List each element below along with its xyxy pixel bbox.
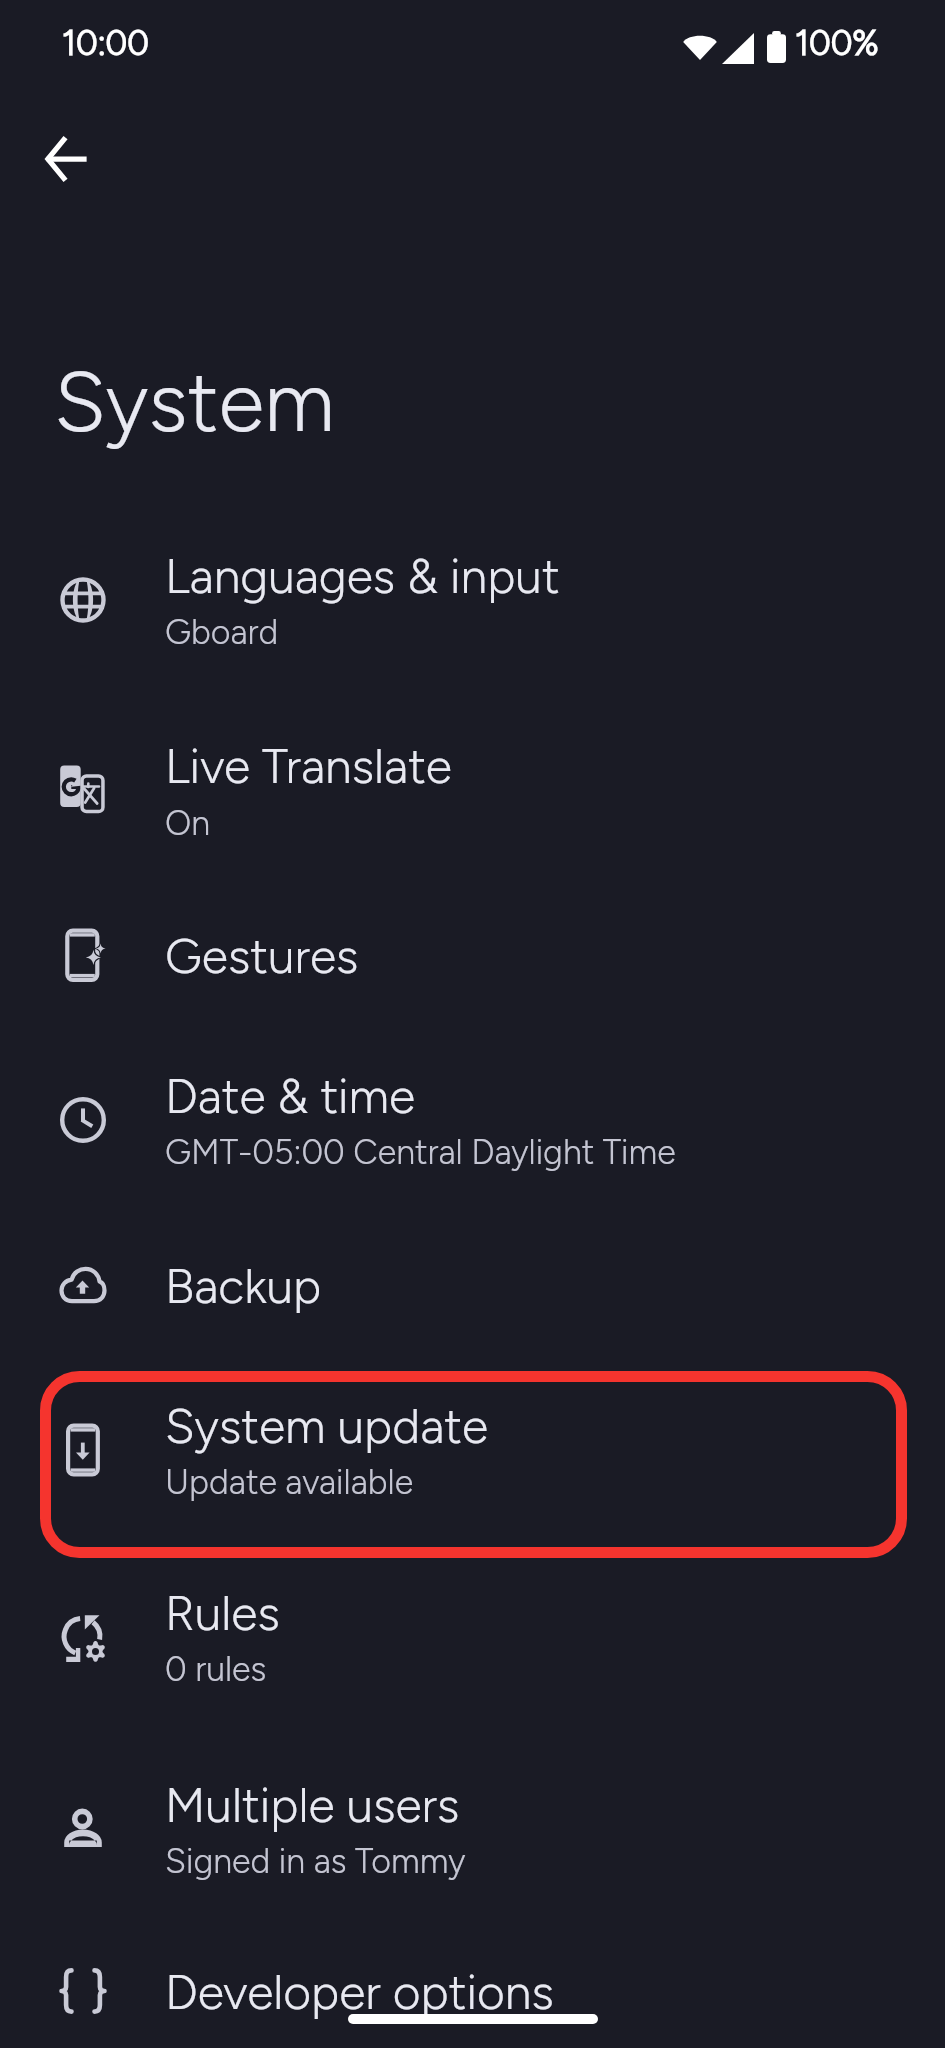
staticText: Developer options — [165, 1963, 554, 2021]
button[interactable] — [0, 695, 945, 885]
staticText: Backup — [165, 1257, 322, 1315]
staticText: System — [54, 351, 335, 452]
staticText: Multiple users — [165, 1776, 460, 1834]
staticText: Date & time — [165, 1067, 416, 1125]
button[interactable] — [0, 1545, 945, 1732]
staticText: 10:00 — [62, 23, 149, 64]
button[interactable] — [0, 1734, 945, 1924]
button[interactable] — [0, 886, 945, 1023]
button[interactable] — [0, 1924, 945, 2048]
staticText: System update — [165, 1397, 488, 1455]
button[interactable] — [0, 505, 945, 695]
staticText: Signed in as Tommy — [165, 1841, 466, 1882]
staticText: Languages & input — [165, 547, 560, 605]
button[interactable] — [0, 1216, 945, 1353]
button[interactable]: Navigate up — [18, 112, 112, 206]
staticText: Rules — [165, 1584, 280, 1642]
staticText: 0 rules — [165, 1649, 267, 1690]
staticText: On — [165, 803, 211, 844]
staticText: Gestures — [165, 927, 359, 985]
staticText: Update available — [165, 1462, 414, 1503]
button[interactable] — [0, 1025, 945, 1215]
staticText: Live Translate — [165, 737, 452, 795]
staticText: 100% — [795, 23, 879, 64]
staticText: GMT-05:00 Central Daylight Time — [165, 1132, 676, 1173]
staticText: Gboard — [165, 612, 279, 653]
button[interactable] — [0, 1355, 945, 1545]
